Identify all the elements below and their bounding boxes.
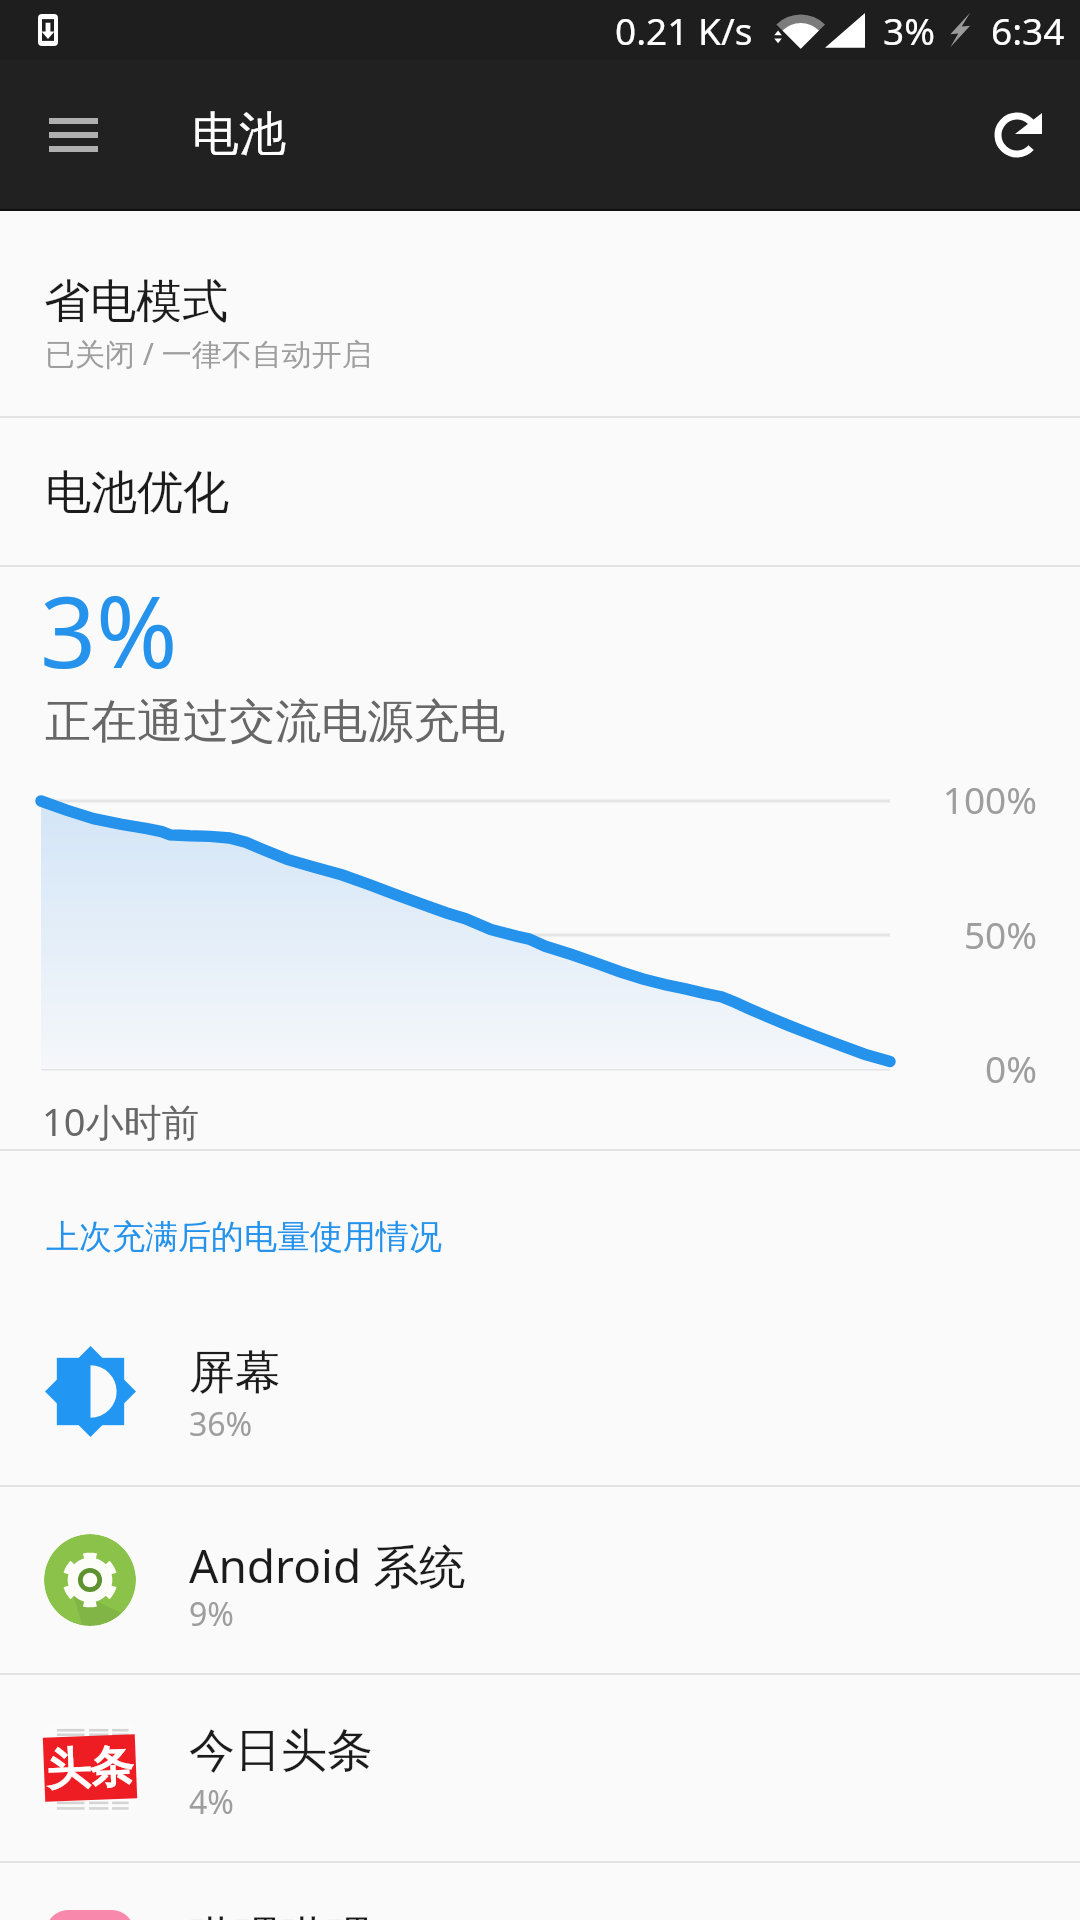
staticText: 4%	[189, 1780, 234, 1824]
button[interactable]: 哔哩哔哩	[0, 1863, 1080, 1920]
staticText: 哔哩哔哩	[189, 1910, 373, 1920]
button[interactable]: Refresh	[976, 87, 1072, 183]
staticText: 6:34	[991, 5, 1065, 55]
staticText: 电池	[192, 105, 286, 164]
button[interactable]: 省电模式	[0, 209, 1080, 416]
button[interactable]: 电池优化	[0, 418, 1080, 565]
staticText: 50%	[887, 909, 1037, 959]
button[interactable]: Open navigation drawer	[25, 87, 121, 183]
staticText: 正在通过交流电源充电	[45, 693, 505, 751]
staticText: 3%	[40, 563, 178, 696]
staticText: 10小时前	[42, 1095, 200, 1147]
staticText: 0.21 K/s	[615, 5, 753, 55]
button[interactable]: 屏幕	[0, 1297, 1080, 1485]
staticText: 已关闭 / 一律不自动开启	[45, 333, 372, 374]
staticText: 36%	[189, 1402, 253, 1446]
staticText: 上次充满后的电量使用情况	[46, 1216, 442, 1258]
button[interactable]: 上次充满后的电量使用情况	[0, 1151, 1080, 1297]
staticText: 今日头条	[189, 1722, 373, 1780]
staticText: 100%	[887, 774, 1037, 824]
staticText: 9%	[189, 1592, 234, 1636]
button[interactable]: 头条	[0, 1675, 1080, 1861]
staticText: 省电模式	[44, 273, 228, 331]
staticText: 头条	[46, 1739, 134, 1798]
staticText: 0%	[887, 1043, 1037, 1093]
button[interactable]: Android 系统	[0, 1487, 1080, 1673]
staticText: 电池优化	[45, 464, 229, 522]
staticText: 3%	[883, 5, 935, 55]
staticText: Android 系统	[189, 1534, 466, 1597]
staticText: 屏幕	[189, 1344, 281, 1402]
